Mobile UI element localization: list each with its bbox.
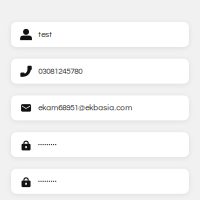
button[interactable]: ekam68951@ekbasia.com (11, 95, 189, 120)
staticText: 03081245780 (38, 67, 82, 75)
staticText: test (38, 30, 52, 39)
button[interactable]: 03081245780 (11, 59, 189, 84)
button[interactable]: test (11, 22, 189, 47)
button[interactable] (11, 132, 189, 157)
staticText: ekam68951@ekbasia.com (38, 104, 132, 112)
button[interactable] (11, 169, 189, 194)
